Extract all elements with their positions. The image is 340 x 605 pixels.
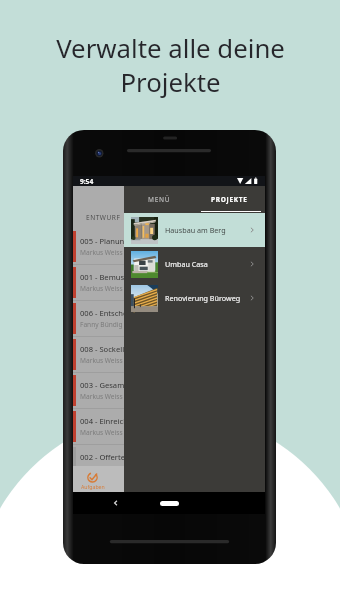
button[interactable]: K — [112, 483, 151, 492]
staticText: Renovierung Büroweg — [165, 293, 241, 303]
button[interactable]: Umbau Casa — [124, 247, 265, 281]
button[interactable]: 002 - Offerte 2 — [73, 445, 265, 480]
button[interactable]: 001 - Bemustrung — [73, 265, 265, 300]
staticText: Fanny Bündig - — [80, 320, 129, 329]
staticText: 003 - Gesamtplan — [80, 380, 143, 390]
button[interactable]: 008 - Sockelleisten — [73, 337, 265, 372]
staticText: PROJEKTE — [211, 195, 248, 204]
button[interactable]: Hausbau am Berg — [124, 213, 265, 247]
staticText: Markus Weiss — [80, 356, 123, 365]
staticText: Aufgaben — [81, 483, 105, 490]
staticText: Umbau Casa — [165, 259, 208, 269]
staticText: Markus Weiss — [80, 392, 123, 401]
staticText: Markus Weiss — [80, 428, 123, 437]
staticText: 001 - Bemustrung — [80, 272, 145, 282]
staticText: Markus Weiss — [80, 248, 123, 257]
button[interactable]: 006 - Entscheid — [73, 301, 265, 336]
staticText: Markus Weiss — [80, 464, 123, 473]
button[interactable]: PROJEKTE — [194, 186, 265, 212]
button[interactable]: 003 - Gesamtplan — [73, 373, 265, 408]
staticText: MENÜ — [148, 195, 171, 204]
staticText: Markus Weiss — [80, 284, 123, 293]
staticText: Verwalte alle deine Projekte — [56, 30, 285, 99]
staticText: ENTWURF — [86, 213, 121, 222]
button[interactable]: Home — [160, 501, 179, 506]
staticText: 008 - Sockelleisten — [80, 344, 146, 354]
staticText: 005 - Planung — [80, 236, 129, 246]
staticText: Hausbau am Berg — [165, 225, 226, 235]
button[interactable]: Back — [109, 496, 123, 510]
button[interactable]: MENÜ — [124, 186, 194, 212]
staticText: 004 - Einreichung — [80, 416, 142, 426]
button[interactable]: 004 - Einreichung — [73, 409, 265, 444]
staticText: 006 - Entscheid — [80, 308, 134, 318]
staticText: 002 - Offerte 2 — [80, 452, 132, 462]
button[interactable]: Renovierung Büroweg — [124, 281, 265, 315]
staticText: 9:54 — [80, 177, 94, 186]
button[interactable]: Aufgaben — [73, 472, 112, 492]
button[interactable]: 005 - Planung — [73, 229, 265, 264]
